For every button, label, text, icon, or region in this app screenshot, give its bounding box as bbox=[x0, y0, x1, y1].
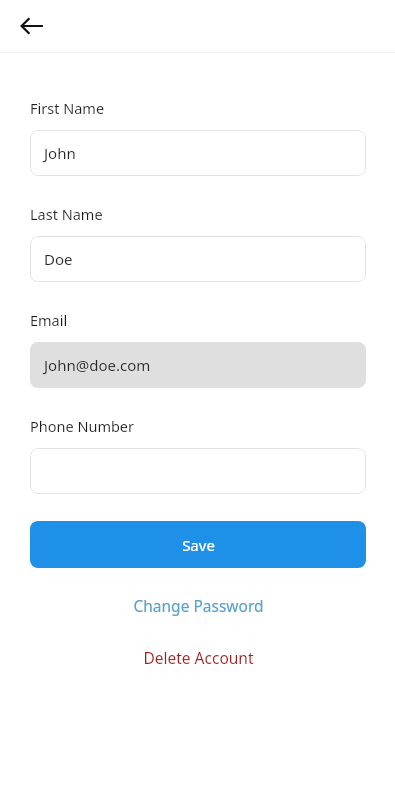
staticText: Delete Account bbox=[143, 647, 254, 668]
button[interactable]: Delete Account bbox=[30, 640, 366, 674]
staticText: Doe bbox=[44, 249, 73, 269]
staticText: Last Name bbox=[30, 204, 103, 224]
staticText: Change Password bbox=[133, 595, 264, 616]
staticText: Phone Number bbox=[30, 416, 135, 436]
button[interactable]: Save bbox=[30, 521, 366, 568]
button[interactable]: Change Password bbox=[30, 588, 366, 622]
staticText: Save bbox=[182, 535, 215, 555]
button[interactable]: Doe bbox=[30, 236, 366, 282]
button[interactable] bbox=[30, 448, 366, 494]
staticText: John bbox=[44, 143, 76, 163]
staticText: First Name bbox=[30, 98, 105, 118]
staticText: John@doe.com bbox=[44, 355, 151, 375]
button[interactable]: John@doe.com bbox=[30, 342, 366, 388]
button[interactable]: Back bbox=[12, 6, 52, 46]
staticText: Email bbox=[30, 310, 68, 330]
button[interactable]: John bbox=[30, 130, 366, 176]
